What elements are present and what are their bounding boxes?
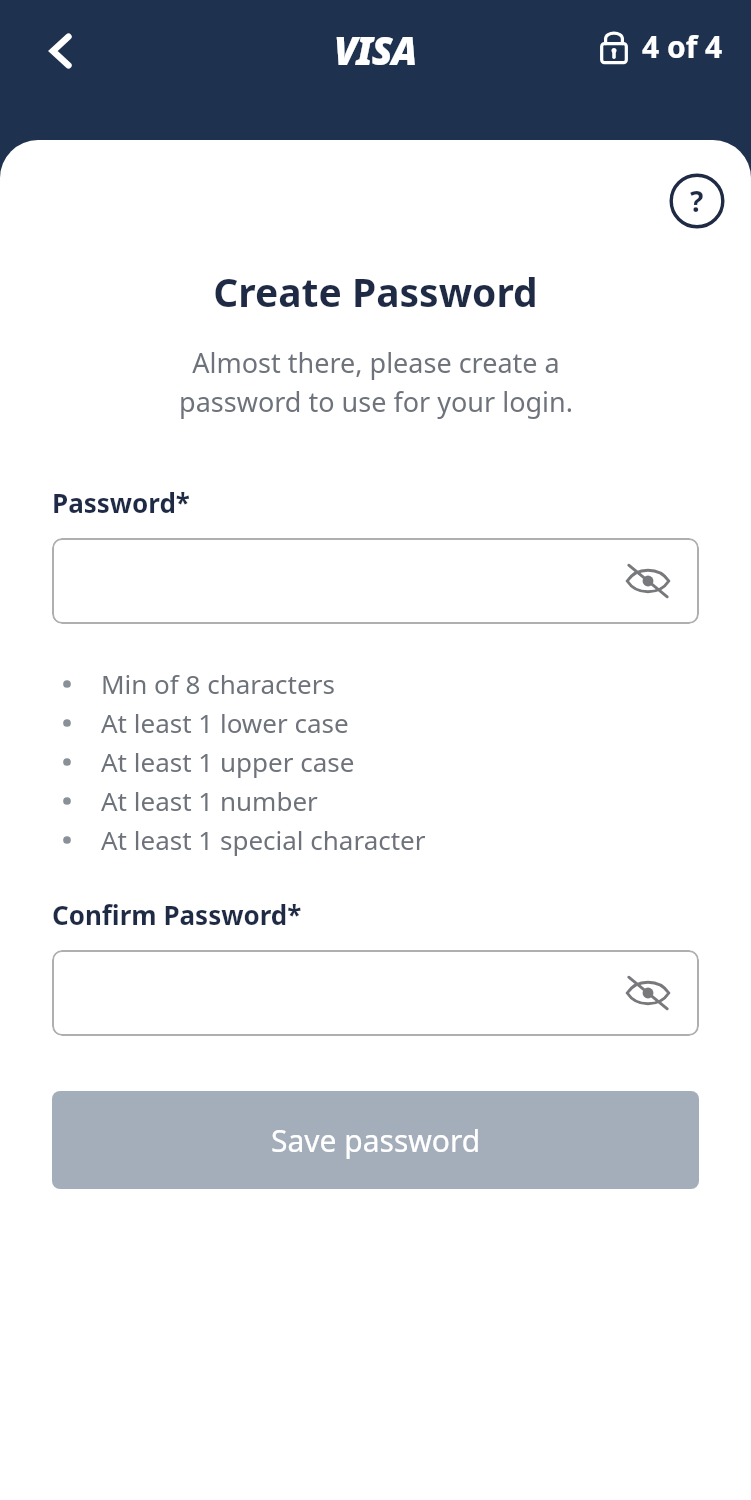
button[interactable]: Back bbox=[30, 20, 92, 82]
staticText: At least 1 number bbox=[101, 783, 318, 818]
staticText: At least 1 special character bbox=[101, 822, 426, 857]
staticText: 4 of 4 bbox=[642, 26, 723, 67]
staticText: Min of 8 characters bbox=[101, 666, 335, 701]
button[interactable]: Show password bbox=[52, 538, 699, 624]
staticText: At least 1 lower case bbox=[101, 705, 349, 740]
staticText: At least 1 upper case bbox=[101, 744, 355, 779]
staticText: Password* bbox=[52, 485, 190, 520]
staticText: Almost there, please create a password t… bbox=[179, 344, 573, 420]
button[interactable]: Show password bbox=[619, 964, 677, 1022]
staticText: Create Password bbox=[213, 265, 538, 318]
staticText: ? bbox=[690, 182, 704, 220]
staticText: VISA bbox=[334, 24, 417, 76]
staticText: Confirm Password* bbox=[52, 897, 302, 932]
button[interactable]: Show password bbox=[619, 552, 677, 610]
staticText: Save password bbox=[271, 1120, 481, 1161]
button[interactable]: Help bbox=[668, 172, 726, 230]
button[interactable]: Show password bbox=[52, 950, 699, 1036]
button[interactable]: Save password bbox=[52, 1091, 699, 1189]
